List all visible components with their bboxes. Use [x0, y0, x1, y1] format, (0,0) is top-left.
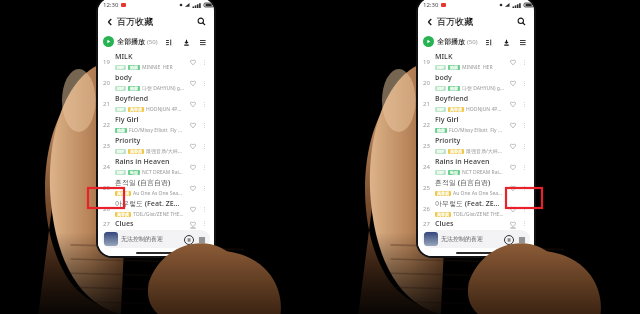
- button[interactable]: More: [199, 78, 209, 88]
- staticText: 20: [423, 79, 430, 87]
- button[interactable]: Favorite: [186, 139, 199, 152]
- button[interactable]: Favorite: [506, 76, 519, 89]
- staticText: Priority: [115, 136, 141, 146]
- staticText: 27: [423, 220, 430, 228]
- staticText: 独家: [437, 128, 445, 133]
- button[interactable]: 23: [98, 135, 214, 156]
- button[interactable]: More: [199, 183, 209, 193]
- button[interactable]: Search: [514, 14, 529, 29]
- button[interactable]: Download: [180, 36, 192, 48]
- button[interactable]: 23: [418, 135, 534, 156]
- button[interactable]: More: [199, 57, 209, 67]
- button[interactable]: Playlist: [515, 233, 528, 246]
- staticText: HOONJUN 4PM 24/7...: [146, 106, 184, 113]
- button[interactable]: 27: [98, 219, 214, 228]
- button[interactable]: 20: [418, 72, 534, 93]
- staticText: 20: [103, 79, 110, 87]
- button[interactable]: More: [519, 219, 529, 228]
- button[interactable]: Favorite: [186, 118, 199, 131]
- button[interactable]: Sort: [483, 36, 495, 48]
- button[interactable]: 26: [418, 198, 534, 219]
- button[interactable]: 21: [418, 93, 534, 114]
- button[interactable]: More: [519, 204, 529, 214]
- button[interactable]: More: [519, 57, 529, 67]
- button[interactable]: More: [199, 219, 209, 228]
- button[interactable]: Back: [423, 15, 436, 28]
- button[interactable]: 19: [98, 51, 214, 72]
- button[interactable]: 22: [418, 114, 534, 135]
- button[interactable]: 26: [98, 198, 214, 219]
- staticText: 23: [103, 142, 110, 150]
- button[interactable]: Favorite: [506, 160, 519, 173]
- button[interactable]: Sort: [163, 36, 175, 48]
- staticText: 아무렇도 (Feat. ZENE THE ...: [435, 199, 504, 209]
- button[interactable]: 无法控制的喜迎: [422, 230, 530, 248]
- button[interactable]: More: [519, 99, 529, 109]
- staticText: TOIL/Gist/ZENE THE ...: [453, 211, 504, 218]
- button[interactable]: 24: [98, 156, 214, 177]
- button[interactable]: More: [519, 141, 529, 151]
- button[interactable]: Favorite: [506, 97, 519, 110]
- staticText: 最强音质/大杯...: [146, 148, 182, 155]
- button[interactable]: Back: [103, 15, 116, 28]
- button[interactable]: 全部播放: [423, 36, 478, 47]
- button[interactable]: Playlist: [195, 233, 208, 246]
- staticText: 독점: [450, 170, 458, 175]
- staticText: VIP: [437, 107, 444, 112]
- button[interactable]: 22: [98, 114, 214, 135]
- button[interactable]: 19: [418, 51, 534, 72]
- staticText: VIP: [117, 86, 124, 91]
- button[interactable]: 全部播放: [103, 36, 158, 47]
- staticText: VIP: [117, 170, 124, 175]
- button[interactable]: More: [199, 162, 209, 172]
- button[interactable]: Favorite: [186, 55, 199, 68]
- button[interactable]: More: [199, 120, 209, 130]
- button[interactable]: Pause: [502, 233, 515, 246]
- staticText: Rains in Heaven: [115, 157, 170, 167]
- button[interactable]: 无法控制的喜迎: [102, 230, 210, 248]
- button[interactable]: Favorite: [506, 139, 519, 152]
- button[interactable]: 24: [418, 156, 534, 177]
- button[interactable]: More: [519, 120, 529, 130]
- staticText: Rains in Heaven: [435, 157, 490, 167]
- button[interactable]: Favorite: [506, 219, 519, 228]
- staticText: 다현 DAHYUN) gonna ...: [142, 85, 184, 92]
- staticText: HOONJUN 4PM 24/7...: [466, 106, 504, 113]
- button[interactable]: Favorite: [186, 97, 199, 110]
- staticText: VIP: [437, 86, 444, 91]
- button[interactable]: More: [519, 78, 529, 88]
- staticText: 24: [423, 163, 430, 171]
- button[interactable]: Favorite: [506, 118, 519, 131]
- button[interactable]: Favorite: [506, 181, 519, 194]
- button[interactable]: 25: [98, 177, 214, 198]
- staticText: 24: [103, 163, 110, 171]
- button[interactable]: More: [199, 204, 209, 214]
- button[interactable]: More: [199, 141, 209, 151]
- button[interactable]: Favorite: [506, 55, 519, 68]
- button[interactable]: More: [519, 162, 529, 172]
- button[interactable]: Favorite: [186, 219, 199, 228]
- button[interactable]: Favorite: [506, 202, 519, 215]
- button[interactable]: 20: [98, 72, 214, 93]
- button[interactable]: 25: [418, 177, 534, 198]
- staticText: Fly Girl: [435, 115, 459, 125]
- button[interactable]: More: [519, 183, 529, 193]
- staticText: 全部播放: [117, 37, 145, 46]
- staticText: VIP: [437, 149, 444, 154]
- button[interactable]: 27: [418, 219, 534, 228]
- staticText: 全部播放: [437, 37, 465, 46]
- button[interactable]: Favorite: [186, 160, 199, 173]
- button[interactable]: More: [199, 99, 209, 109]
- button[interactable]: Favorite: [186, 202, 199, 215]
- button[interactable]: More options: [517, 36, 529, 48]
- button[interactable]: Favorite: [186, 76, 199, 89]
- button[interactable]: Search: [194, 14, 209, 29]
- button[interactable]: 21: [98, 93, 214, 114]
- button[interactable]: More options: [197, 36, 209, 48]
- button[interactable]: Favorite: [186, 181, 199, 194]
- button[interactable]: Pause: [182, 233, 195, 246]
- staticText: (50): [467, 38, 478, 46]
- button[interactable]: Download: [500, 36, 512, 48]
- staticText: VIP: [437, 65, 444, 70]
- staticText: 흔적일 (自言自语): [115, 178, 171, 188]
